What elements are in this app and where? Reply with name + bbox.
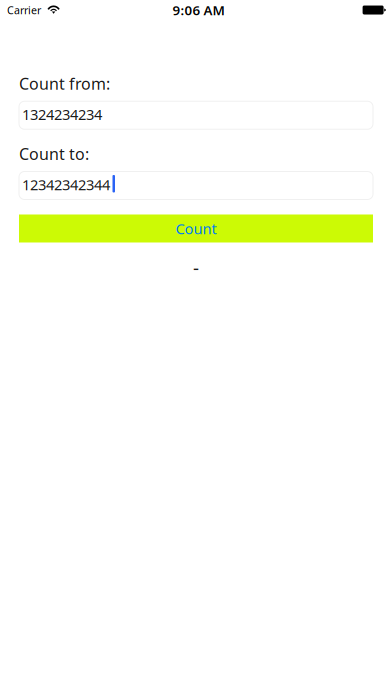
staticText: 9:06 AM [172, 1, 224, 19]
staticText: Count to: [19, 143, 89, 164]
staticText: Count from: [19, 73, 110, 94]
staticText: 1324234234 [22, 104, 102, 124]
staticText: 12342342344 [22, 175, 110, 194]
staticText: Count [175, 219, 216, 238]
button[interactable]: Count [19, 214, 373, 242]
staticText: - [193, 255, 199, 280]
button[interactable]: 12342342344 [19, 171, 373, 199]
staticText: Carrier [7, 3, 41, 17]
button[interactable]: 1324234234 [19, 101, 373, 129]
